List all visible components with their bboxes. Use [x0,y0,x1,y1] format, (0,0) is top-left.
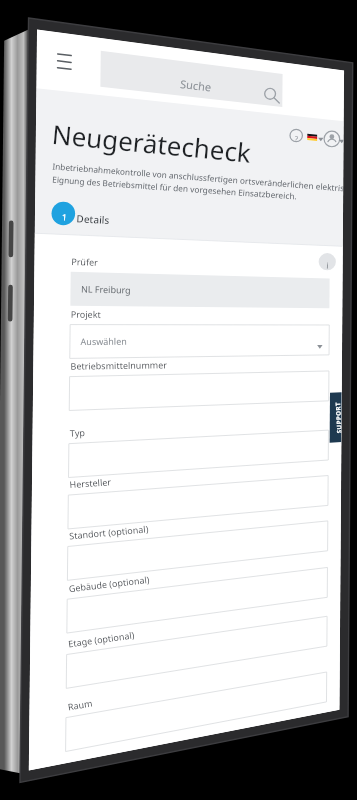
button[interactable]: Suche [70,25,285,67]
button[interactable] [38,675,338,711]
button[interactable] [38,503,338,539]
button[interactable]: Account [332,103,354,121]
button[interactable]: Open navigation menu [33,37,59,63]
button[interactable] [38,316,338,352]
button[interactable]: Help [296,104,314,122]
button[interactable]: Support [327,378,343,438]
button[interactable] [38,371,338,407]
button[interactable] [38,447,338,483]
button[interactable] [38,739,338,775]
button[interactable]: Information [330,232,346,248]
button[interactable] [38,256,338,292]
button[interactable] [38,559,338,595]
button[interactable] [38,619,338,655]
